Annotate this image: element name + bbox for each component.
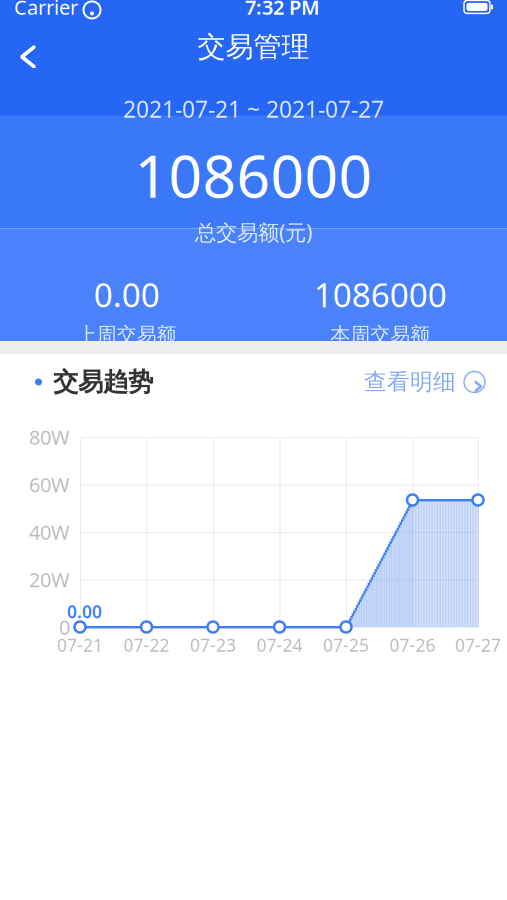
staticText: 80W bbox=[29, 424, 70, 450]
staticText: 60W bbox=[29, 471, 70, 498]
staticText: 0.00 bbox=[67, 600, 102, 623]
staticText: 20W bbox=[29, 566, 70, 593]
staticText: 总交易额(元) bbox=[195, 218, 312, 246]
staticText: 07-26 bbox=[389, 633, 435, 656]
staticText: 0.00 bbox=[94, 272, 160, 317]
staticText: 本周交易额 bbox=[330, 322, 430, 347]
staticText: 07-27 bbox=[455, 633, 501, 656]
staticText: Carrier bbox=[14, 0, 78, 20]
staticText: 40W bbox=[29, 519, 70, 545]
staticText: 交易趋势 bbox=[53, 366, 153, 397]
staticText: 查看明细 bbox=[364, 368, 456, 396]
staticText: 0 bbox=[59, 614, 70, 640]
staticText: 1086000 bbox=[314, 272, 447, 317]
staticText: 2021-07-21 ~ 2021-07-27 bbox=[123, 94, 384, 124]
staticText: 1086000 bbox=[134, 136, 372, 214]
staticText: 交易管理 bbox=[197, 30, 309, 64]
staticText: 上周交易额 bbox=[77, 322, 177, 347]
staticText: 07-22 bbox=[123, 633, 169, 656]
button[interactable]: 查看明细 bbox=[364, 368, 485, 396]
staticText: 07-23 bbox=[190, 633, 236, 656]
staticText: 7:32 PM bbox=[245, 0, 320, 20]
staticText: 07-25 bbox=[323, 633, 369, 656]
staticText: 07-24 bbox=[256, 633, 302, 656]
button[interactable]: Back bbox=[0, 25, 44, 69]
staticText: 07-21 bbox=[57, 633, 103, 656]
